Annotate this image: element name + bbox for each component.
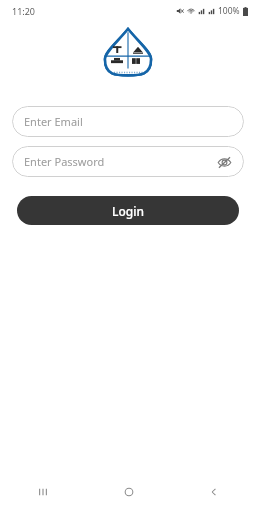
button[interactable]: Enter Password	[12, 146, 244, 177]
staticText: 11:20	[12, 5, 36, 17]
button[interactable]: Enter Email	[12, 106, 244, 137]
staticText: Enter Password	[24, 154, 216, 169]
staticText: Enter Email	[24, 114, 232, 129]
button[interactable]: Home	[86, 472, 171, 512]
button[interactable]: Login	[17, 196, 239, 225]
button[interactable]: Toggle password visibility	[216, 154, 232, 170]
button[interactable]: Recent apps	[0, 472, 86, 512]
button[interactable]: Back	[171, 472, 256, 512]
staticText: 100%	[218, 5, 240, 17]
staticText: Login	[112, 203, 144, 219]
